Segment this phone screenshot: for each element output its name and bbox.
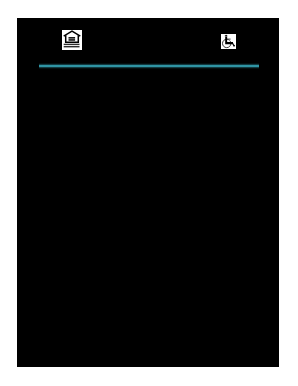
- button[interactable]: Equal Housing Opportunity: [62, 30, 82, 50]
- button[interactable]: Accessibility: [221, 34, 236, 49]
